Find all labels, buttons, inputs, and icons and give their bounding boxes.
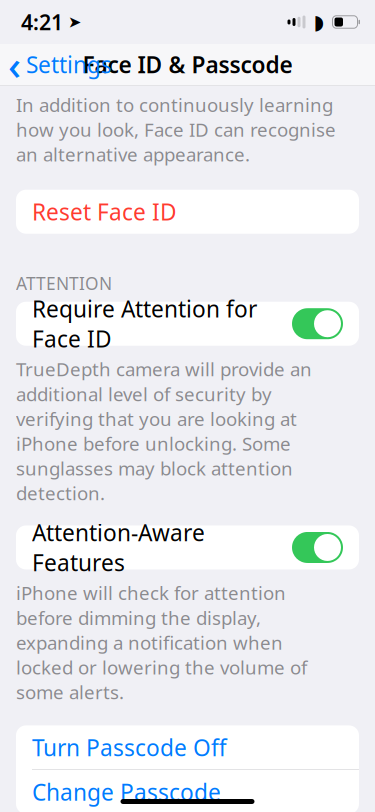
staticText: Turn Passcode Off bbox=[32, 732, 227, 762]
staticText: iPhone will check for attention before d… bbox=[16, 580, 307, 704]
button[interactable]: Require Attention for Face ID bbox=[16, 302, 359, 346]
staticText: TrueDepth camera will provide an additio… bbox=[16, 357, 312, 505]
button[interactable]: Reset Face ID bbox=[16, 190, 359, 234]
staticText: ‹ bbox=[8, 38, 21, 91]
staticText: Settings bbox=[26, 49, 112, 79]
staticText: 4:21 bbox=[21, 8, 63, 36]
staticText: Face ID & Passcode bbox=[82, 49, 292, 79]
button[interactable]: ‹ bbox=[0, 42, 122, 86]
staticText: Require Attention for Face ID bbox=[32, 294, 257, 354]
staticText: Change Passcode bbox=[32, 777, 221, 807]
button[interactable]: Turn Passcode Off bbox=[16, 725, 359, 769]
button[interactable]: Attention-Aware Features bbox=[16, 525, 359, 569]
staticText: ➤ bbox=[68, 13, 81, 31]
staticText: Reset Face ID bbox=[32, 197, 177, 227]
staticText: In addition to continuously learning how… bbox=[16, 92, 336, 167]
button[interactable]: Change Passcode bbox=[16, 770, 359, 812]
staticText: Attention-Aware Features bbox=[32, 517, 205, 578]
staticText: ◗ bbox=[313, 11, 324, 33]
staticText: ATTENTION bbox=[16, 272, 112, 295]
